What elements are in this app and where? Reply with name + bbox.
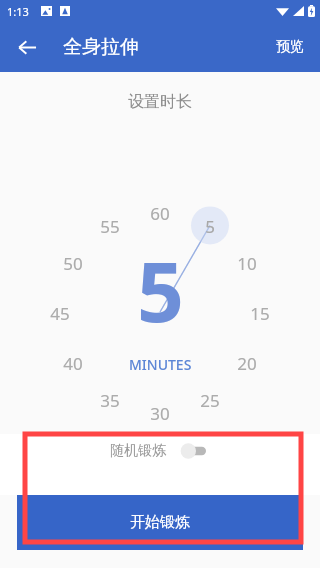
button[interactable]: 20 <box>233 349 261 377</box>
staticText: 50 <box>63 252 83 275</box>
staticText: 10 <box>237 252 257 275</box>
button[interactable]: 预览 <box>264 29 316 65</box>
button[interactable]: 25 <box>196 386 224 414</box>
staticText: 5 <box>205 215 215 238</box>
button[interactable]: 15 <box>246 299 274 327</box>
staticText: 45 <box>50 302 70 325</box>
staticText: 全身拉伸 <box>63 35 139 59</box>
button[interactable]: 35 <box>96 386 124 414</box>
button[interactable]: 55 <box>96 212 124 240</box>
staticText: 25 <box>200 389 220 412</box>
button[interactable]: 10 <box>233 249 261 277</box>
button[interactable]: 随机锻炼 <box>102 437 219 465</box>
button[interactable]: 50 <box>59 249 87 277</box>
button[interactable]: 40 <box>59 349 87 377</box>
staticText: 55 <box>100 215 120 238</box>
staticText: 15 <box>250 302 270 325</box>
staticText: 5 <box>137 234 184 346</box>
staticText: 20 <box>237 352 257 375</box>
button[interactable]: Back <box>6 26 48 68</box>
staticText: 60 <box>150 202 170 225</box>
button[interactable]: 60 <box>146 199 174 227</box>
staticText: 随机锻炼 <box>110 442 166 460</box>
button[interactable]: 开始锻炼 <box>17 495 303 550</box>
button[interactable]: 30 <box>146 399 174 427</box>
staticText: 开始锻炼 <box>130 513 190 532</box>
button[interactable]: 5 <box>196 212 224 240</box>
staticText: 35 <box>100 389 120 412</box>
staticText: 设置时长 <box>0 92 320 112</box>
staticText: 1:13 <box>7 4 29 19</box>
staticText: 30 <box>150 402 170 425</box>
staticText: 预览 <box>276 38 304 56</box>
button[interactable]: 45 <box>46 299 74 327</box>
staticText: 40 <box>63 352 83 375</box>
staticText: MINUTES <box>129 355 192 374</box>
